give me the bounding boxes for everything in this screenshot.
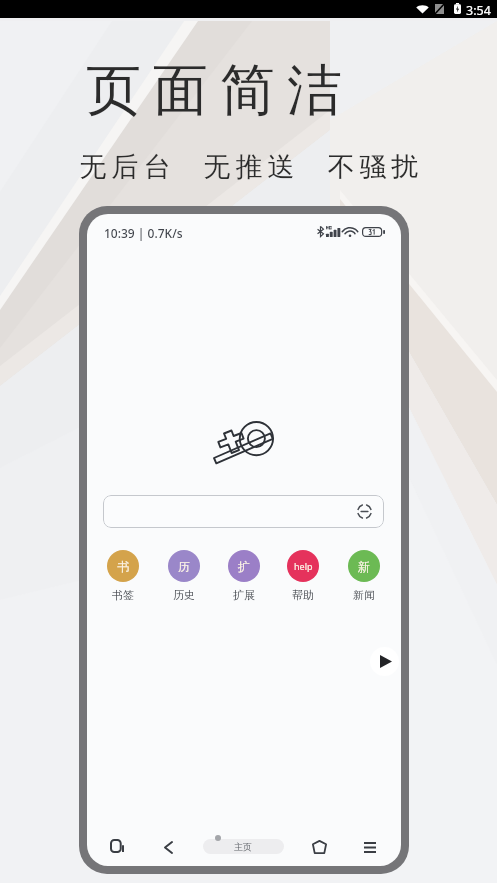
button[interactable]: 新 — [348, 550, 380, 602]
button[interactable]: Tabs — [104, 833, 130, 859]
staticText: 不骚扰 — [325, 150, 421, 184]
staticText: 书 — [117, 559, 129, 574]
staticText: help — [294, 560, 313, 572]
staticText: 书签 — [112, 588, 134, 602]
staticText: 扩 — [238, 559, 250, 574]
button[interactable]: Back — [155, 834, 181, 860]
button[interactable]: Menu — [357, 834, 383, 860]
staticText: 扩展 — [233, 588, 255, 602]
staticText: 历 — [178, 559, 190, 574]
staticText: 页面简洁 — [80, 56, 348, 125]
staticText: 帮助 — [292, 588, 314, 602]
button[interactable]: 扩 — [228, 550, 260, 602]
staticText: 3:54 — [466, 2, 491, 19]
button[interactable]: Scan code — [103, 495, 384, 528]
staticText: 无推送 — [201, 150, 297, 184]
staticText: 新 — [358, 559, 370, 574]
other: Scan code — [356, 503, 373, 520]
button[interactable]: 历 — [168, 550, 200, 602]
button[interactable]: Home — [306, 834, 332, 860]
button[interactable]: Play — [370, 647, 399, 676]
button[interactable]: 书 — [107, 550, 139, 602]
staticText: 新闻 — [353, 588, 375, 602]
staticText: 10:39 | 0.7K/s — [104, 225, 183, 241]
staticText: 无后台 — [77, 150, 173, 184]
button[interactable]: 主页 — [203, 839, 284, 854]
staticText: 主页 — [234, 841, 252, 852]
button[interactable]: help — [287, 550, 319, 602]
staticText: 历史 — [173, 588, 195, 602]
